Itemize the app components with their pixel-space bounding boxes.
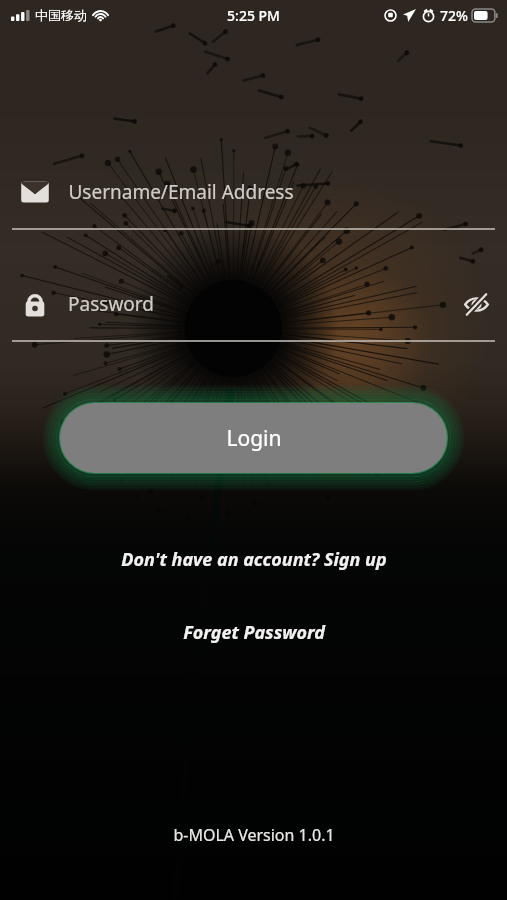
other: Password bbox=[20, 289, 50, 319]
staticText: Login bbox=[226, 424, 282, 453]
staticText: Password bbox=[68, 291, 154, 317]
staticText: Don't have an account? Sign up bbox=[121, 547, 387, 572]
other: Email bbox=[20, 177, 50, 207]
staticText: 5:25 PM bbox=[227, 6, 280, 25]
staticText: 中国移动 bbox=[35, 7, 87, 23]
button[interactable]: Show password bbox=[454, 282, 498, 326]
button[interactable]: Password bbox=[0, 282, 507, 326]
button[interactable]: Login bbox=[60, 403, 447, 473]
button[interactable]: Don't have an account? Sign up bbox=[109, 543, 399, 576]
staticText: Username/Email Address bbox=[68, 179, 294, 205]
button[interactable]: Forget Password bbox=[171, 616, 337, 649]
button[interactable]: Email bbox=[0, 170, 507, 214]
staticText: Forget Password bbox=[183, 620, 325, 645]
staticText: b-MOLA Version 1.0.1 bbox=[173, 824, 335, 846]
staticText: 72% bbox=[440, 6, 468, 25]
